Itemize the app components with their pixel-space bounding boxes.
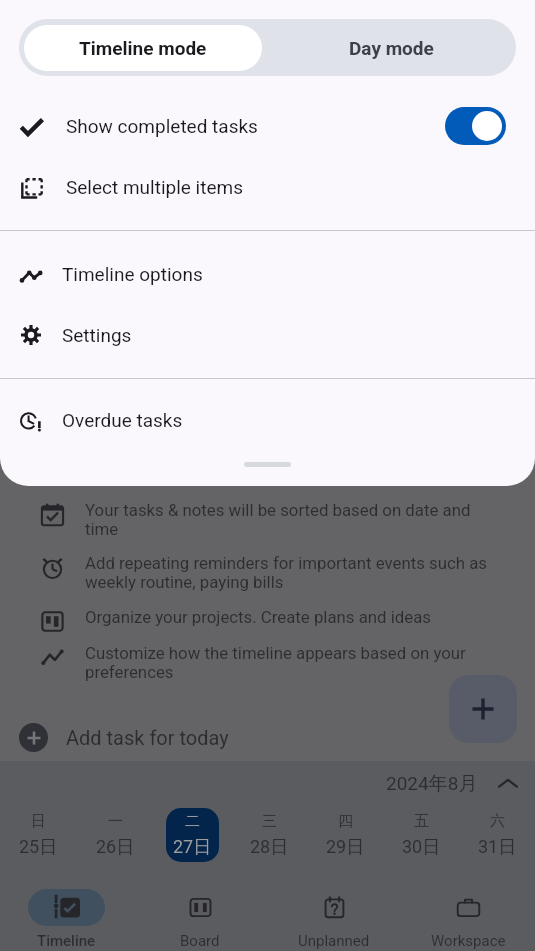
- staticText: 27日: [173, 836, 212, 859]
- staticText: 六: [490, 812, 505, 831]
- button[interactable]: Show completed tasks: [0, 95, 535, 156]
- staticText: 五: [414, 812, 429, 831]
- staticText: 31日: [478, 836, 517, 859]
- button[interactable]: Settings: [0, 304, 535, 365]
- staticText: 日: [31, 812, 46, 831]
- staticText: Timeline: [37, 932, 96, 950]
- staticText: 30日: [402, 836, 441, 859]
- button[interactable]: Overdue tasks: [0, 389, 535, 450]
- staticText: Customize how the timeline appears based…: [85, 643, 466, 683]
- staticText: Select multiple items: [66, 176, 243, 198]
- button[interactable]: Timeline mode: [24, 25, 262, 71]
- staticText: 一: [108, 812, 123, 831]
- button[interactable]: Add task for today: [0, 714, 535, 760]
- staticText: 2024年8月: [386, 772, 478, 796]
- staticText: 三: [262, 812, 277, 831]
- button[interactable]: 二: [166, 808, 219, 862]
- button[interactable]: Timeline: [0, 875, 133, 951]
- staticText: Add repeating reminders for important ev…: [85, 553, 487, 593]
- staticText: 四: [338, 812, 353, 831]
- staticText: Timeline mode: [79, 37, 207, 59]
- button[interactable]: 五: [395, 808, 448, 862]
- staticText: 28日: [250, 836, 289, 859]
- button[interactable]: Add task: [449, 675, 517, 743]
- button[interactable]: 一: [89, 808, 142, 862]
- staticText: Organize your projects. Create plans and…: [85, 607, 432, 627]
- staticText: Day mode: [349, 37, 434, 59]
- button[interactable]: 三: [243, 808, 296, 862]
- staticText: 29日: [326, 836, 365, 859]
- button[interactable]: Unplanned: [267, 875, 401, 951]
- button[interactable]: Board: [133, 875, 267, 951]
- staticText: 25日: [19, 836, 58, 859]
- button[interactable]: [445, 107, 506, 145]
- staticText: Board: [180, 932, 220, 950]
- staticText: Your tasks & notes will be sorted based …: [85, 500, 471, 540]
- staticText: Timeline options: [62, 263, 203, 285]
- button[interactable]: 日: [12, 808, 65, 862]
- staticText: Settings: [62, 324, 132, 346]
- button[interactable]: Workspace: [401, 875, 535, 951]
- button[interactable]: Collapse calendar: [495, 771, 521, 797]
- staticText: Workspace: [431, 932, 506, 950]
- button[interactable]: Select multiple items: [0, 156, 535, 217]
- staticText: Add task for today: [66, 726, 229, 749]
- button[interactable]: 四: [319, 808, 372, 862]
- staticText: Unplanned: [298, 932, 370, 950]
- staticText: 26日: [96, 836, 135, 859]
- button[interactable]: 六: [471, 808, 524, 862]
- staticText: Show completed tasks: [66, 115, 258, 137]
- button[interactable]: Timeline options: [0, 243, 535, 304]
- staticText: 二: [185, 812, 200, 831]
- staticText: Overdue tasks: [62, 409, 183, 431]
- button[interactable]: Day mode: [267, 19, 516, 76]
